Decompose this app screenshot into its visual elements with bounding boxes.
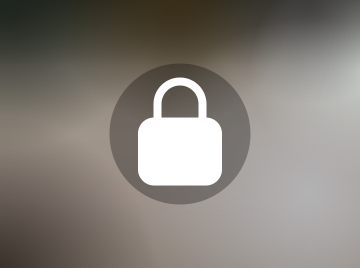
button[interactable]: Locked content (109, 63, 250, 204)
